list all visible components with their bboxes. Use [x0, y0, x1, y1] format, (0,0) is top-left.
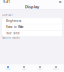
button[interactable]: Games — [16, 64, 32, 72]
staticText: Apps — [38, 68, 42, 70]
button[interactable]: Apps — [32, 64, 48, 72]
staticText: True Tone — [6, 31, 20, 35]
staticText: Search — [53, 68, 59, 70]
button[interactable]: True Tone — [2, 30, 62, 36]
staticText: DISPLAY — [2, 13, 13, 17]
staticText: 9:41 — [3, 0, 10, 4]
staticText: Display — [25, 4, 39, 9]
button[interactable]: Raise to Wake — [2, 24, 62, 30]
staticText: Today — [5, 68, 10, 70]
button[interactable]: Brightness — [2, 18, 62, 24]
staticText: Games — [21, 68, 26, 70]
button[interactable]: Search — [48, 64, 64, 72]
button[interactable]: Today — [0, 64, 16, 72]
staticText: Raise to Wake — [6, 25, 24, 29]
staticText: Brightness — [6, 19, 21, 23]
staticText: Screen mode — [2, 36, 20, 40]
